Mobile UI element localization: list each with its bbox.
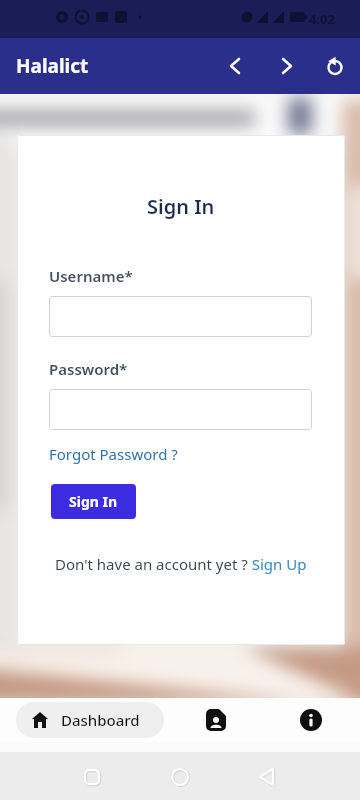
staticText: Username* xyxy=(49,266,133,286)
button[interactable] xyxy=(203,707,229,733)
button[interactable]: Don't have an account yet ? Sign Up xyxy=(55,554,307,574)
button[interactable] xyxy=(49,296,312,337)
staticText: Halalict xyxy=(16,53,89,79)
staticText: Sign In xyxy=(69,492,118,511)
button[interactable]: Dashboard xyxy=(16,702,164,738)
staticText: 4:02 xyxy=(309,10,335,28)
staticText: Password* xyxy=(49,359,128,379)
button[interactable]: Sign In xyxy=(51,484,136,519)
button[interactable]: Forgot Password ? xyxy=(49,444,178,464)
button[interactable] xyxy=(219,50,251,82)
button[interactable] xyxy=(49,389,312,430)
button[interactable] xyxy=(54,742,102,790)
button[interactable] xyxy=(271,50,303,82)
button[interactable] xyxy=(319,50,351,82)
button[interactable] xyxy=(299,708,323,732)
button[interactable] xyxy=(156,742,204,790)
button[interactable] xyxy=(258,742,306,790)
staticText: Dashboard xyxy=(61,710,140,730)
staticText: Sign In xyxy=(147,193,215,220)
